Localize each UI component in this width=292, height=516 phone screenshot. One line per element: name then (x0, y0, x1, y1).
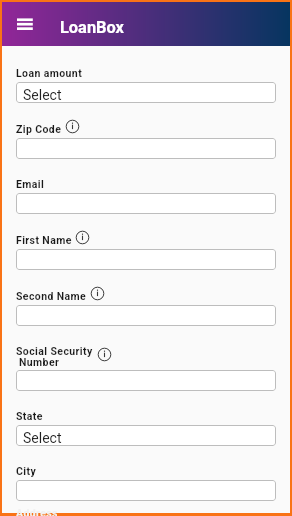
button[interactable]: More information (91, 287, 104, 300)
staticText: Second Name (16, 290, 87, 302)
button[interactable]: Select (16, 82, 276, 103)
button[interactable]: Open navigation menu (15, 15, 39, 34)
staticText: Email (16, 178, 45, 190)
button[interactable] (16, 138, 276, 159)
button[interactable]: Select (16, 425, 276, 446)
button[interactable]: More information (76, 231, 89, 244)
button[interactable] (16, 249, 276, 270)
button[interactable]: More information (66, 120, 79, 133)
staticText: LoanBox (60, 18, 124, 37)
button[interactable] (16, 480, 276, 501)
staticText: City (16, 465, 37, 477)
staticText: Zip Code (16, 123, 62, 135)
staticText: Address (16, 507, 58, 516)
staticText: Select (23, 430, 62, 446)
button[interactable] (16, 305, 276, 326)
staticText: Number (16, 356, 60, 366)
staticText: First Name (16, 234, 72, 246)
button[interactable] (16, 370, 276, 391)
staticText: Select (23, 87, 62, 103)
button[interactable]: More information (98, 348, 111, 361)
button[interactable] (16, 193, 276, 214)
staticText: Loan amount (16, 67, 83, 79)
staticText: Social Security (16, 345, 93, 357)
staticText: State (16, 410, 43, 422)
